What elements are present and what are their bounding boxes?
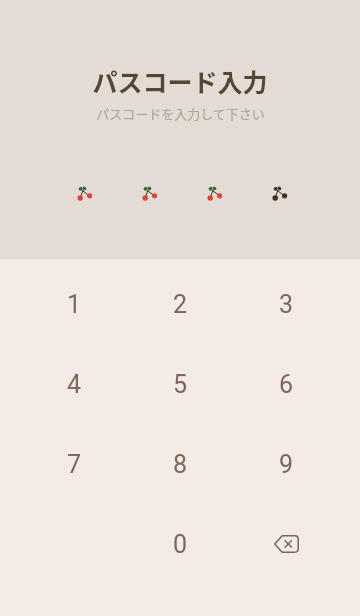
button[interactable]: 7: [21, 424, 127, 504]
staticText: 8: [173, 450, 188, 479]
staticText: 3: [279, 290, 294, 319]
staticText: 1: [67, 290, 82, 319]
button[interactable]: Delete: [233, 504, 339, 584]
staticText: 5: [173, 370, 188, 399]
staticText: 9: [279, 450, 294, 479]
button[interactable]: 8: [127, 424, 233, 504]
staticText: 2: [173, 290, 188, 319]
staticText: パスコード入力: [92, 63, 268, 99]
staticText: 4: [67, 370, 82, 399]
staticText: 7: [67, 450, 82, 479]
staticText: パスコードを入力して下さい: [96, 104, 265, 123]
button[interactable]: 4: [21, 344, 127, 424]
button[interactable]: 5: [127, 344, 233, 424]
button[interactable]: 0: [127, 504, 233, 584]
button[interactable]: 2: [127, 264, 233, 344]
staticText: 0: [173, 530, 188, 559]
button[interactable]: 3: [233, 264, 339, 344]
button[interactable]: 6: [233, 344, 339, 424]
button[interactable]: 1: [21, 264, 127, 344]
other: Delete: [264, 522, 308, 566]
staticText: 6: [279, 370, 294, 399]
button[interactable]: 9: [233, 424, 339, 504]
